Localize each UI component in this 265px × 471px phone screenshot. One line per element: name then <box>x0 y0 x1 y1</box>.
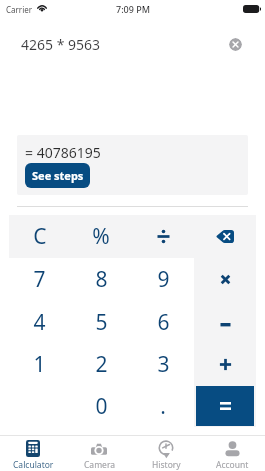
staticText: 0 <box>95 392 108 421</box>
button[interactable]: 6 <box>132 301 194 343</box>
button[interactable]: 1 <box>9 343 70 385</box>
button[interactable]: C <box>9 215 70 258</box>
staticText: 3 <box>157 350 170 379</box>
button[interactable]: Add <box>194 343 256 385</box>
staticText: 2 <box>95 350 108 379</box>
button[interactable]: 5 <box>70 301 132 343</box>
button[interactable]: 3 <box>132 343 194 385</box>
button[interactable] <box>196 386 254 426</box>
staticText: = 40786195 <box>25 143 101 162</box>
staticText: 1 <box>33 350 46 379</box>
staticText: % <box>92 222 110 251</box>
staticText: 4265 * 9563 <box>21 35 101 54</box>
staticText: 7:09 PM <box>116 3 150 15</box>
button[interactable]: 4 <box>9 301 70 343</box>
button[interactable]: Divide <box>132 215 194 258</box>
button[interactable]: Subtract <box>194 301 256 343</box>
staticText: 6 <box>157 308 170 337</box>
button[interactable]: Multiply <box>194 258 256 301</box>
button[interactable]: See steps <box>25 163 90 188</box>
staticText: Camera <box>84 459 115 471</box>
staticText: 9 <box>157 265 170 294</box>
button[interactable]: . <box>132 385 194 427</box>
button[interactable]: 7 <box>9 258 70 301</box>
staticText: Account <box>216 459 249 471</box>
staticText: History <box>152 459 181 471</box>
button[interactable]: Calculator <box>0 436 66 471</box>
button[interactable]: 8 <box>70 258 132 301</box>
button[interactable]: 2 <box>70 343 132 385</box>
staticText: . <box>160 392 166 421</box>
button[interactable]: Clear <box>229 38 242 51</box>
button[interactable]: History <box>133 436 199 471</box>
button[interactable]: 9 <box>132 258 194 301</box>
staticText: See steps <box>32 168 84 183</box>
staticText: 8 <box>95 265 108 294</box>
staticText: 7 <box>33 265 46 294</box>
button[interactable]: Account <box>199 436 265 471</box>
button[interactable]: % <box>70 215 132 258</box>
button[interactable]: Backspace <box>194 215 256 258</box>
staticText: Carrier <box>6 4 33 15</box>
staticText: 4 <box>33 308 46 337</box>
staticText: 5 <box>95 308 108 337</box>
button[interactable]: 0 <box>70 385 132 427</box>
staticText: C <box>33 222 47 251</box>
button[interactable]: Camera <box>66 436 132 471</box>
staticText: Calculator <box>13 459 54 471</box>
